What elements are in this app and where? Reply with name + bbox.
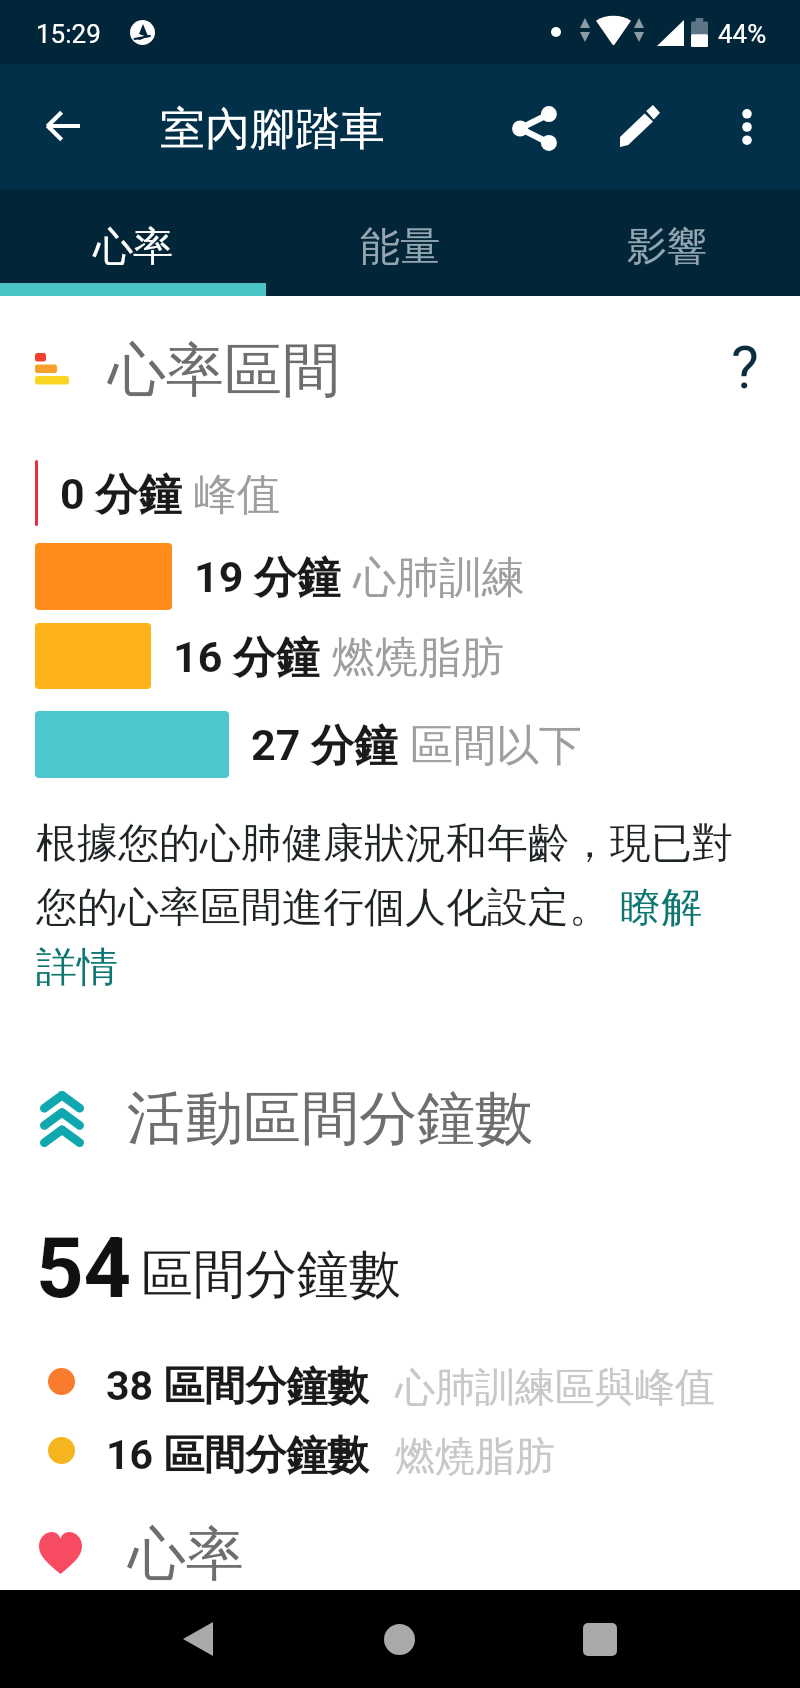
staticText: 15:29: [36, 19, 101, 49]
staticText: 19 分鐘: [194, 551, 341, 605]
button[interactable]: Help: [708, 330, 782, 404]
staticText: 峰值: [194, 468, 280, 522]
staticText: 心肺訓練: [353, 551, 525, 605]
staticText: 燃燒脂肪: [332, 631, 504, 685]
button[interactable]: More options: [703, 83, 791, 171]
staticText: 能量: [360, 221, 440, 271]
staticText: 室內腳踏車: [160, 101, 385, 158]
staticText: 心率區間: [108, 334, 340, 407]
staticText: 16 分鐘: [173, 631, 320, 685]
staticText: 影響: [627, 221, 707, 271]
staticText: 0 分鐘: [60, 468, 182, 522]
staticText: 根據您的心肺健康狀況和年齡，現已對您的心率區間進行個人化設定。 瞭解詳情: [36, 818, 742, 993]
staticText: 區間分鐘數: [141, 1242, 401, 1308]
button[interactable]: Recents: [540, 1595, 660, 1683]
button[interactable]: Edit: [596, 82, 684, 170]
button[interactable]: 影響: [533, 189, 800, 296]
staticText: 27 分鐘: [251, 719, 398, 773]
staticText: 燃燒脂肪: [395, 1431, 555, 1481]
button[interactable]: Home: [339, 1595, 459, 1683]
staticText: ?: [731, 333, 759, 402]
staticText: 心率: [128, 1518, 244, 1591]
staticText: 心肺訓練區與峰值: [395, 1362, 715, 1412]
staticText: 44%: [718, 19, 767, 49]
button[interactable]: Back: [19, 82, 107, 170]
button[interactable]: Back: [138, 1595, 258, 1683]
staticText: 38 區間分鐘數: [106, 1361, 369, 1413]
staticText: 16 區間分鐘數: [106, 1430, 369, 1482]
staticText: 活動區間分鐘數: [127, 1082, 533, 1155]
staticText: 心率: [93, 221, 173, 271]
button[interactable]: 心率: [0, 189, 266, 296]
staticText: 區間以下: [410, 719, 582, 773]
button[interactable]: 能量: [266, 189, 533, 296]
button[interactable]: Share: [491, 83, 579, 171]
staticText: 54: [36, 1220, 132, 1317]
